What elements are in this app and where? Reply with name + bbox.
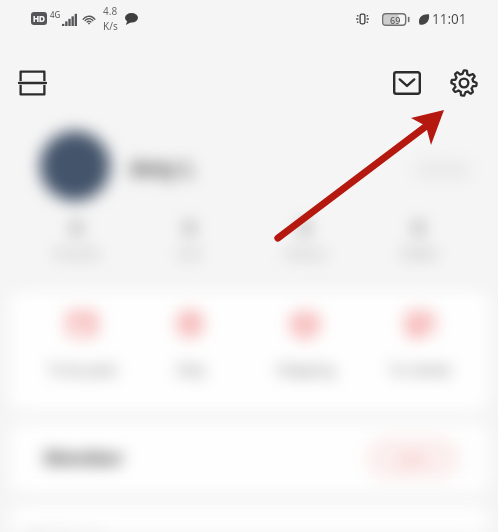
staticText: To review	[389, 360, 451, 379]
button[interactable]: Shipping	[257, 308, 353, 379]
button[interactable]: Settings	[442, 61, 486, 105]
staticText: Ship	[176, 360, 205, 379]
button[interactable]: 0	[371, 217, 467, 261]
button[interactable]: Messages	[385, 61, 429, 105]
staticText: 4G	[50, 9, 61, 20]
button[interactable]: 0	[142, 217, 238, 261]
button[interactable]: To be paid	[34, 308, 130, 379]
staticText: Member	[44, 445, 124, 471]
staticText: K/s	[103, 19, 118, 33]
staticText: Amy L	[130, 154, 195, 183]
button[interactable]: To review	[372, 308, 468, 379]
staticText: 69	[390, 14, 401, 26]
staticText: 4.8	[103, 4, 118, 18]
button[interactable]: Join	[365, 436, 461, 480]
button[interactable]: Ship	[142, 308, 238, 379]
button[interactable]: 0	[29, 217, 125, 261]
staticText: 0	[300, 217, 310, 239]
staticText: 11:01	[432, 10, 467, 28]
staticText: HD	[33, 13, 45, 24]
staticText: Shipping	[276, 360, 335, 379]
button[interactable]: Split screen	[10, 61, 54, 105]
button[interactable]: 0	[257, 217, 353, 261]
staticText: To be paid	[48, 360, 116, 379]
